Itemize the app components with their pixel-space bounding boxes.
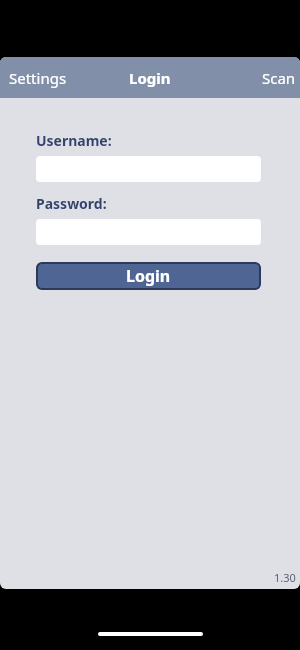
staticText: Settings (9, 68, 67, 88)
button[interactable]: Settings (0, 60, 76, 96)
staticText: Username: (36, 131, 112, 150)
staticText: Password: (36, 194, 107, 213)
staticText: Scan (262, 68, 296, 88)
staticText: 1.30 (274, 570, 296, 585)
button[interactable]: Scan (258, 60, 300, 96)
staticText: Login (126, 265, 171, 287)
other: Home indicator (98, 632, 203, 636)
button[interactable]: Login (36, 262, 261, 290)
staticText: Login (129, 68, 171, 88)
